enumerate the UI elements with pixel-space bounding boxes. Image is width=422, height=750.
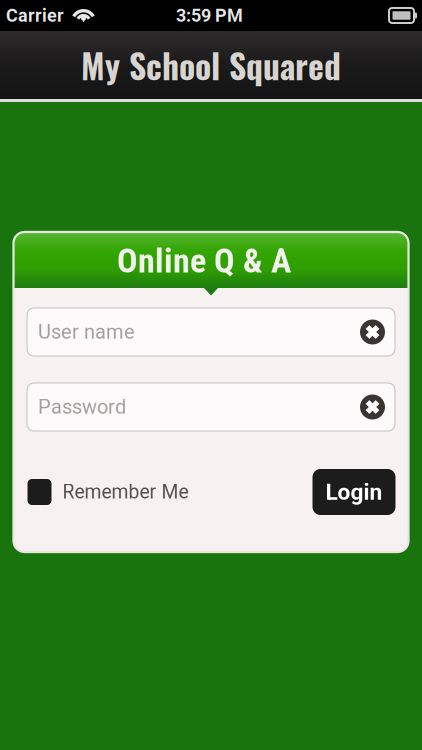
staticText: Online Q & A [117, 241, 291, 281]
button[interactable]: Clear Password [360, 394, 385, 419]
button[interactable]: Clear User name [360, 319, 385, 344]
staticText: 3:59 PM [176, 5, 243, 26]
staticText: User name [38, 320, 135, 344]
staticText: Password [38, 395, 126, 419]
staticText: Carrier [6, 5, 64, 26]
button[interactable]: Remember Me [27, 479, 188, 505]
staticText: Remember Me [62, 481, 188, 503]
staticText: Login [325, 479, 382, 505]
button[interactable]: Login [312, 469, 395, 515]
staticText: My School Squared [81, 40, 341, 90]
